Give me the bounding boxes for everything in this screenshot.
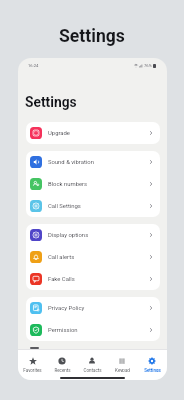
button[interactable]: Settings	[137, 350, 167, 372]
staticText: Fake Calls	[48, 276, 75, 283]
staticText: Contacts	[83, 368, 102, 372]
staticText: Upgrade	[48, 130, 70, 137]
button[interactable]: Display options	[26, 224, 160, 246]
button[interactable]: Contacts	[77, 350, 107, 372]
button[interactable]: Block numbers	[26, 173, 160, 195]
button[interactable]: Upgrade	[26, 122, 160, 144]
button[interactable]: Favorites	[18, 350, 47, 372]
button[interactable]: Fake Calls	[26, 268, 160, 290]
staticText: 76%	[144, 63, 152, 68]
staticText: Sound & vibration	[48, 159, 94, 166]
staticText: Permission	[48, 327, 78, 334]
staticText: Settings	[25, 94, 77, 110]
staticText: Favorites	[23, 368, 42, 372]
staticText: Display options	[48, 232, 89, 239]
staticText: Call alerts	[48, 254, 75, 261]
button[interactable]: Sound & vibration	[26, 151, 160, 173]
button[interactable]: Call Settings	[26, 195, 160, 217]
button[interactable]: Permission	[26, 319, 160, 341]
staticText: Recents	[54, 368, 71, 372]
staticText: 16:24	[28, 63, 39, 68]
staticText: Settings	[144, 368, 161, 372]
button[interactable]: Call alerts	[26, 246, 160, 268]
button[interactable]: Keypad	[107, 350, 137, 372]
button[interactable]: Privacy Policy	[26, 297, 160, 319]
staticText: Call Settings	[48, 203, 81, 210]
button[interactable]: Recents	[47, 350, 77, 372]
staticText: Settings	[59, 26, 125, 47]
staticText: Block numbers	[48, 181, 88, 188]
staticText: Keypad	[115, 368, 130, 372]
staticText: Privacy Policy	[48, 305, 85, 312]
